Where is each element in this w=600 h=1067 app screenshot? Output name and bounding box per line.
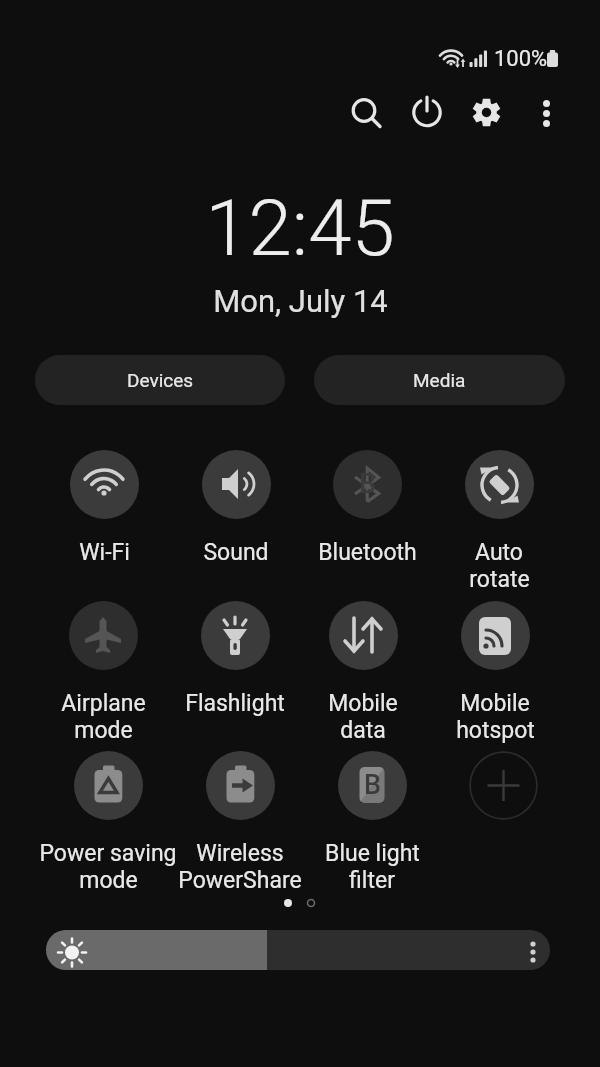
button[interactable]: B — [306, 751, 438, 894]
button[interactable]: Mobile — [297, 601, 429, 744]
button[interactable]: Media — [314, 355, 565, 405]
staticText: Media — [413, 369, 466, 391]
staticText: Wi-Fi — [79, 539, 130, 566]
staticText: Auto — [475, 539, 523, 566]
staticText: Wireless — [196, 840, 284, 867]
staticText: Devices — [127, 369, 194, 391]
staticText: Sound — [203, 539, 269, 566]
staticText: rotate — [469, 566, 530, 593]
button[interactable]: Flashlight — [169, 601, 301, 717]
button[interactable]: B — [301, 450, 433, 566]
staticText: filter — [349, 867, 395, 894]
staticText: Mobile — [328, 690, 398, 717]
staticText: data — [340, 717, 386, 744]
staticText: hotspot — [456, 717, 535, 744]
button[interactable]: Auto — [433, 450, 565, 593]
button[interactable]: Power saving — [42, 751, 174, 894]
staticText: B — [359, 468, 377, 500]
button[interactable]: Airplane — [37, 601, 169, 744]
staticText: 100% — [494, 46, 548, 72]
button[interactable]: Mobile — [429, 601, 561, 744]
staticText: mode — [74, 717, 133, 744]
staticText: Airplane — [61, 690, 146, 717]
staticText: Mon, July 14 — [213, 283, 388, 319]
staticText: 12:45 — [205, 183, 395, 274]
button[interactable]: Brightness — [46, 930, 550, 970]
button[interactable]: Search — [344, 90, 390, 136]
staticText: PowerShare — [178, 867, 302, 894]
staticText: Power saving — [39, 840, 177, 867]
staticText: Mobile — [460, 690, 530, 717]
button[interactable]: Wi-Fi — [38, 450, 170, 566]
button[interactable]: Power — [404, 90, 450, 136]
staticText: Bluetooth — [318, 539, 417, 566]
button[interactable]: Add — [469, 751, 538, 820]
button[interactable]: Settings — [464, 90, 510, 136]
button[interactable]: Devices — [35, 355, 285, 405]
button[interactable]: More options — [524, 90, 570, 136]
staticText: B — [364, 769, 382, 801]
button[interactable]: Sound — [170, 450, 302, 566]
staticText: mode — [79, 867, 138, 894]
button[interactable]: Wireless — [174, 751, 306, 894]
staticText: Flashlight — [185, 690, 285, 717]
staticText: Blue light — [325, 840, 420, 867]
